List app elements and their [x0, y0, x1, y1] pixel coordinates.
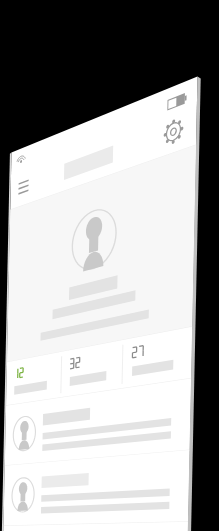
button[interactable]: Profile screen phone mockup [0, 0, 219, 531]
